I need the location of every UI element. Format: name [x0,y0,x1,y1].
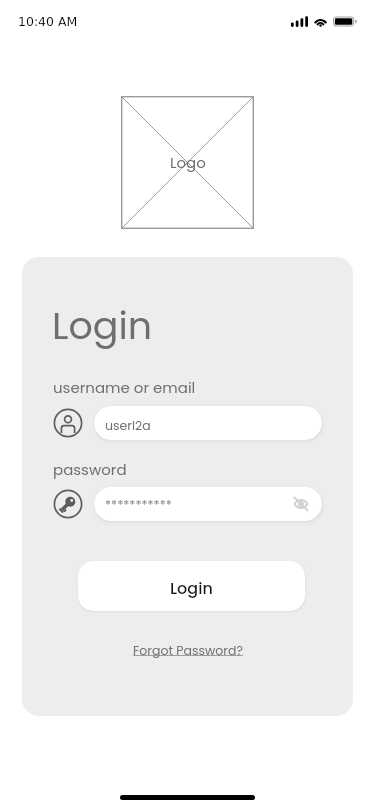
staticText: password [53,459,127,480]
button[interactable]: Login [78,561,305,611]
staticText: *********** [105,496,172,513]
button[interactable]: Forgot Password? [127,639,249,662]
staticText: username or email [53,377,196,398]
staticText: 10:40 AM [18,14,78,29]
button[interactable]: *********** [94,487,322,521]
staticText: Logo [170,152,206,173]
staticText: Forgot Password? [133,642,243,659]
staticText: Login [170,577,213,599]
staticText: Login [52,299,153,352]
staticText: userl2a [105,417,151,434]
button[interactable]: Show password [291,494,311,514]
button[interactable]: userl2a [94,406,322,440]
